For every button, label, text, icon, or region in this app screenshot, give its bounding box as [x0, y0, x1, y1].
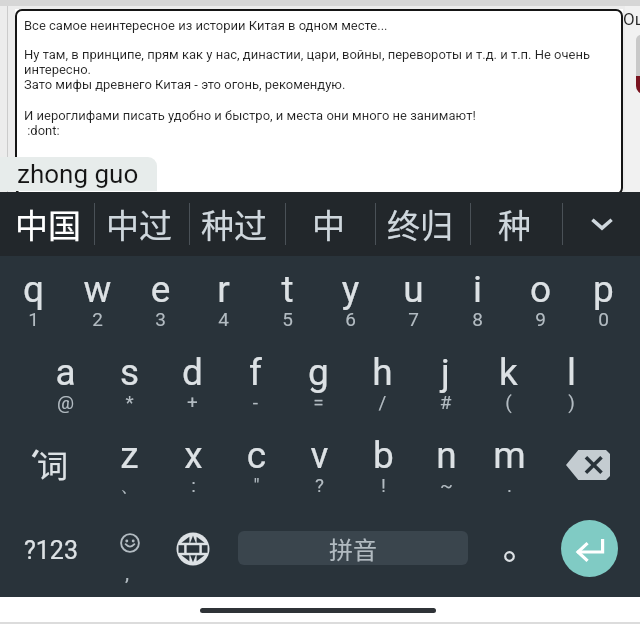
staticText: 9 [509, 308, 572, 330]
button[interactable]: r [192, 256, 255, 341]
button[interactable]: l [540, 339, 603, 424]
staticText: ~ [415, 474, 478, 496]
button[interactable]: 种过 [189, 192, 279, 256]
staticText: - [224, 391, 287, 413]
button[interactable]: i [446, 256, 509, 341]
staticText: # [414, 391, 477, 413]
staticText: w [66, 268, 129, 311]
button[interactable]: 中国 [3, 192, 93, 256]
staticText: h [351, 351, 414, 394]
button[interactable]: x [162, 422, 225, 507]
staticText: t [256, 268, 319, 311]
button[interactable]: y [319, 256, 382, 341]
button[interactable]: f [224, 339, 287, 424]
staticText: . [478, 474, 541, 496]
staticText: :dont: [24, 123, 60, 138]
button[interactable]: Emoji [99, 511, 161, 597]
staticText: d [161, 351, 224, 394]
staticText: z [98, 434, 161, 477]
staticText: 种过 [201, 200, 267, 248]
staticText: s [98, 351, 161, 394]
staticText: i [446, 268, 509, 311]
staticText: Ну там, в принципе, прям как у нас, дина… [24, 47, 616, 77]
button[interactable]: v [288, 422, 351, 507]
button[interactable]: g [287, 339, 350, 424]
staticText: ? [288, 474, 351, 496]
staticText: u [382, 268, 445, 311]
staticText: 2 [66, 308, 129, 330]
staticText: ?123 [24, 536, 78, 565]
button[interactable]: a [34, 339, 97, 424]
staticText: n [415, 434, 478, 477]
staticText: = [287, 391, 350, 413]
button[interactable]: j [414, 339, 477, 424]
button[interactable]: z [98, 422, 161, 507]
button[interactable]: Expand candidates [570, 192, 634, 256]
button[interactable]: e [129, 256, 192, 341]
staticText: 5 [256, 308, 319, 330]
staticText: + [161, 391, 224, 413]
button[interactable]: Switch language [161, 511, 223, 597]
staticText: Оц [623, 9, 640, 29]
staticText: И иероглифами писать удобно и быстро, и … [24, 108, 476, 123]
staticText: g [287, 351, 350, 394]
staticText: m [478, 434, 541, 477]
button[interactable]: c [225, 422, 288, 507]
staticText: : [162, 474, 225, 496]
button[interactable]: m [478, 422, 541, 507]
staticText: 8 [446, 308, 509, 330]
button[interactable]: w [66, 256, 129, 341]
button[interactable]: q [2, 256, 65, 341]
button[interactable]: o [509, 256, 572, 341]
button[interactable]: 终归 [375, 192, 465, 256]
button[interactable]: t [256, 256, 319, 341]
button[interactable]: h [351, 339, 414, 424]
staticText: 中过 [106, 200, 172, 248]
staticText: 7 [382, 308, 445, 330]
button[interactable]: 中 [283, 192, 373, 256]
staticText: * [98, 391, 161, 413]
button[interactable]: 拼音 [238, 531, 468, 565]
staticText: p [572, 268, 635, 311]
staticText: zhong guo [17, 159, 139, 189]
staticText: 中国 [15, 200, 81, 248]
staticText: j [414, 351, 477, 394]
staticText: 、 [98, 474, 161, 498]
button[interactable]: n [415, 422, 478, 507]
staticText: , [125, 561, 130, 586]
button[interactable]: p [572, 256, 635, 341]
staticText: r [192, 268, 255, 311]
staticText: ) [540, 391, 603, 413]
button[interactable]: Period [479, 511, 539, 597]
staticText: / [351, 391, 414, 413]
staticText: " [225, 474, 288, 496]
button[interactable]: Backspace [557, 422, 619, 507]
staticText: v [288, 434, 351, 477]
button[interactable]: zhong guo [0, 157, 157, 191]
staticText: 拼音 [329, 531, 377, 565]
staticText: Зато мифы древнего Китая - это огонь, ре… [24, 77, 346, 92]
staticText: b [352, 434, 415, 477]
staticText: 6 [319, 308, 382, 330]
button[interactable]: 种 [469, 192, 559, 256]
staticText: 中 [312, 200, 345, 248]
button[interactable]: 词 [19, 422, 81, 507]
button[interactable]: Enter [561, 520, 618, 577]
staticText: @ [34, 391, 97, 413]
staticText: x [162, 434, 225, 477]
button[interactable]: 中过 [94, 192, 184, 256]
button[interactable]: ?123 [19, 507, 83, 593]
staticText: y [319, 268, 382, 311]
staticText: 4 [192, 308, 255, 330]
button[interactable]: u [382, 256, 445, 341]
staticText: 0 [572, 308, 635, 330]
staticText: o [509, 268, 572, 311]
button[interactable]: s [98, 339, 161, 424]
button[interactable]: d [161, 339, 224, 424]
button[interactable]: b [352, 422, 415, 507]
staticText: 终归 [387, 200, 453, 248]
staticText: f [224, 351, 287, 394]
staticText: l [540, 351, 603, 394]
button[interactable]: k [477, 339, 540, 424]
staticText: 1 [2, 308, 65, 330]
